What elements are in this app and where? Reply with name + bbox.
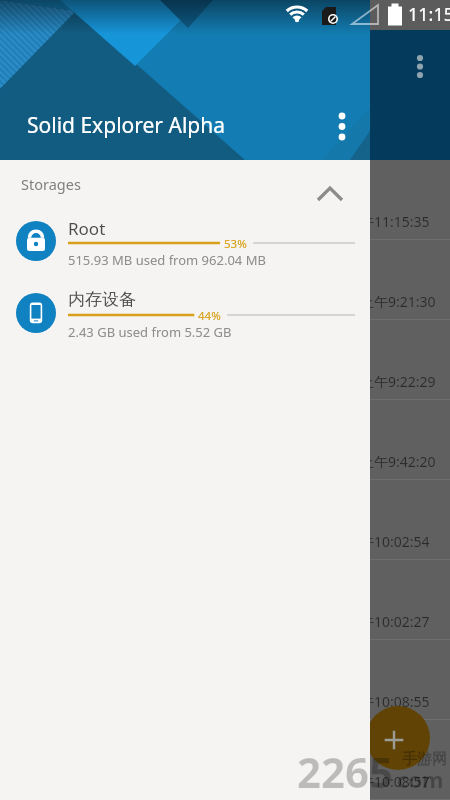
button[interactable]: More options <box>412 50 442 80</box>
staticText: 内存设备 <box>68 289 136 310</box>
staticText: 午10:08:57 <box>360 772 430 791</box>
staticText: 11:15 <box>408 2 450 27</box>
staticText: 2265 <box>297 743 394 800</box>
button[interactable]: 午10:02:27 <box>370 560 450 640</box>
button[interactable]: 午10:02:54 <box>370 480 450 560</box>
button[interactable]: Storages <box>0 160 370 205</box>
staticText: 515.93 MB used from 962.04 MB <box>68 251 266 269</box>
button[interactable]: Add <box>366 706 430 770</box>
staticText: 上午9:42:20 <box>360 452 436 471</box>
staticText: com <box>397 764 444 794</box>
button[interactable]: 午10:08:57 <box>370 720 450 800</box>
staticText: 2.43 GB used from 5.52 GB <box>68 323 232 341</box>
button[interactable]: 午10:08:55 <box>370 640 450 720</box>
staticText: 午10:02:27 <box>360 612 430 631</box>
staticText: 手游网 <box>402 750 447 769</box>
button[interactable]: Root <box>0 205 370 277</box>
button[interactable]: 午11:15:35 <box>370 160 450 240</box>
staticText: Solid Explorer Alpha <box>27 111 226 140</box>
staticText: 午11:15:35 <box>360 212 430 231</box>
staticText: 上午9:22:29 <box>360 372 436 391</box>
staticText: 午10:02:54 <box>360 532 430 551</box>
button[interactable]: 内存设备 <box>0 277 370 349</box>
button[interactable]: 上午9:21:30 <box>370 240 450 320</box>
staticText: Storages <box>21 174 81 194</box>
staticText: Root <box>68 217 106 240</box>
button[interactable]: Overflow menu <box>326 108 358 140</box>
staticText: 上午9:21:30 <box>360 292 436 311</box>
staticText: 44% <box>198 308 221 324</box>
button[interactable]: 上午9:22:29 <box>370 320 450 400</box>
staticText: 53% <box>224 236 247 252</box>
staticText: 午10:08:55 <box>360 692 430 711</box>
button[interactable]: 上午9:42:20 <box>370 400 450 480</box>
